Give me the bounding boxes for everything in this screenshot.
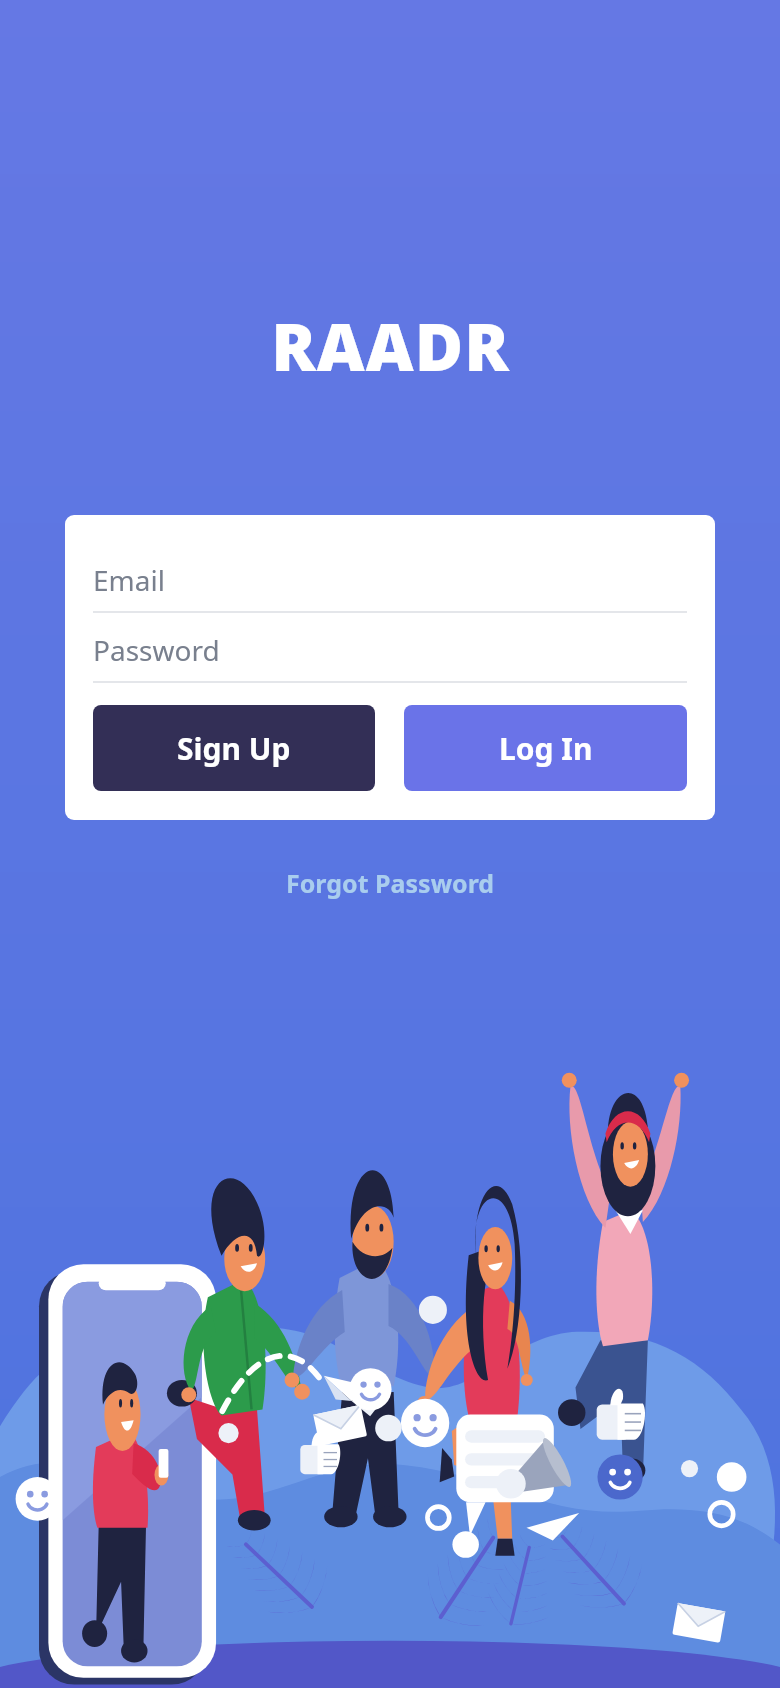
staticText: Sign Up [177, 728, 291, 769]
staticText: Password [93, 631, 220, 669]
staticText: Forgot Password [286, 866, 495, 900]
button[interactable]: Forgot Password [268, 860, 513, 906]
button[interactable]: Log In [404, 705, 687, 791]
staticText: Email [93, 561, 165, 599]
button[interactable]: Password [93, 619, 687, 683]
button[interactable]: Sign Up [93, 705, 375, 791]
button[interactable]: Email [93, 549, 687, 613]
staticText: Log In [499, 728, 593, 769]
staticText: RAADR [271, 300, 510, 390]
